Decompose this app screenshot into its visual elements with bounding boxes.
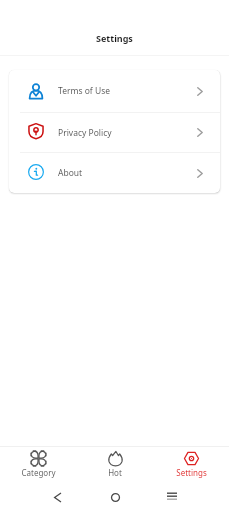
staticText: Settings [176,467,207,478]
button[interactable]: Settings [153,447,229,482]
button[interactable]: Hot [77,447,153,482]
staticText: Category [21,467,56,478]
button[interactable]: Home [77,482,153,512]
staticText: Privacy Policy [58,127,112,139]
button[interactable]: Recent apps [153,482,229,512]
staticText: Terms of Use [58,85,111,97]
staticText: Settings [96,32,133,44]
staticText: Hot [108,467,122,478]
staticText: About [58,167,83,179]
button[interactable]: Privacy Policy [9,113,220,152]
button[interactable]: Terms of Use [9,70,220,112]
button[interactable]: Category [0,447,77,482]
button[interactable]: Back [0,482,77,512]
button[interactable]: About [9,153,220,193]
